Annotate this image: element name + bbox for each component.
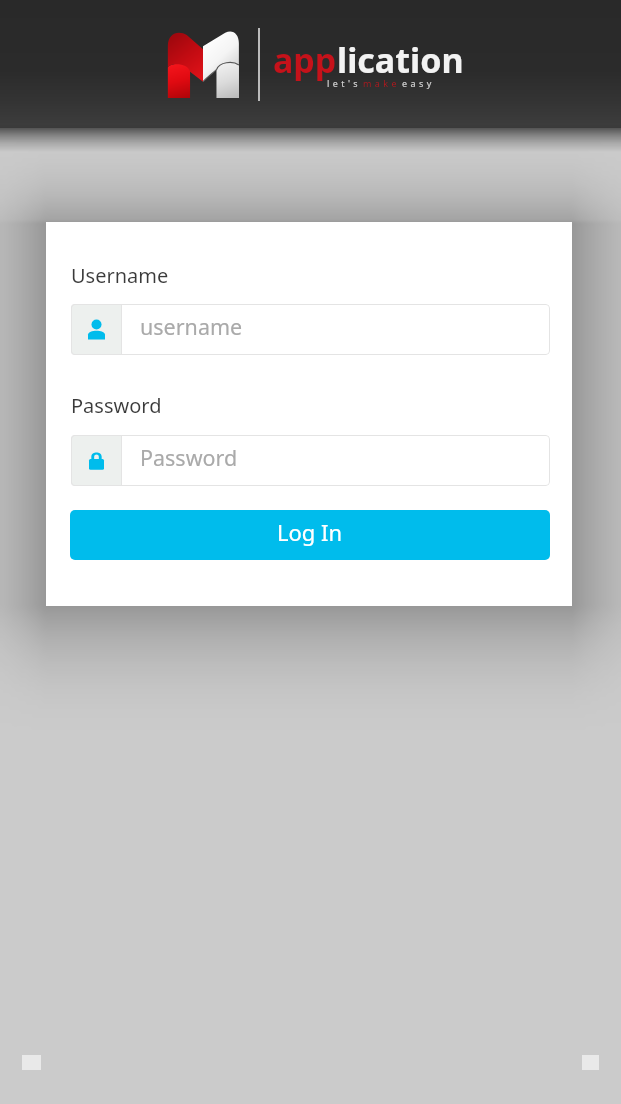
other: Application logo [166, 31, 240, 99]
button[interactable]: User name [71, 304, 550, 355]
staticText: Password [71, 392, 162, 419]
staticText: lication [337, 37, 464, 83]
staticText: Username [71, 262, 169, 289]
other: Password [71, 435, 122, 486]
staticText: app [273, 37, 337, 83]
other: User name [71, 304, 122, 355]
button[interactable]: Password [71, 435, 550, 486]
staticText: make [363, 77, 400, 89]
staticText: let's [327, 77, 361, 89]
staticText: username [140, 312, 243, 341]
staticText: Log In [277, 517, 343, 547]
staticText: Password [140, 443, 238, 472]
staticText: easy [402, 77, 435, 89]
button[interactable]: Log In [70, 510, 550, 560]
